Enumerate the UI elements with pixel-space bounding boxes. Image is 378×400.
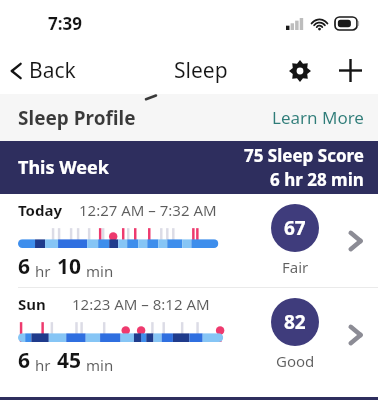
button[interactable]: Today bbox=[0, 194, 378, 287]
staticText: 10 bbox=[57, 252, 82, 281]
staticText: 6 hr 28 min bbox=[270, 168, 364, 191]
button[interactable]: Back bbox=[0, 50, 86, 91]
staticText: 6 bbox=[18, 346, 31, 375]
staticText: min bbox=[86, 355, 114, 375]
staticText: Learn More bbox=[272, 106, 364, 129]
staticText: 82 bbox=[284, 309, 306, 335]
staticText: 6 bbox=[18, 252, 31, 281]
staticText: Today bbox=[18, 200, 63, 220]
button[interactable]: Open sleep details bbox=[332, 211, 378, 271]
staticText: 67 bbox=[284, 215, 306, 241]
staticText: Good bbox=[276, 351, 315, 371]
staticText: 45 bbox=[57, 346, 82, 375]
staticText: Sleep bbox=[174, 56, 228, 85]
button[interactable]: Add bbox=[331, 51, 370, 90]
staticText: 12:23 AM – 8:12 AM bbox=[72, 294, 210, 314]
staticText: Sleep Profile bbox=[18, 105, 136, 131]
staticText: Sun bbox=[18, 294, 46, 314]
staticText: min bbox=[86, 261, 114, 281]
staticText: 7:39 bbox=[48, 12, 82, 35]
button[interactable]: Settings bbox=[281, 52, 319, 90]
button[interactable]: Open sleep details bbox=[332, 305, 378, 365]
button[interactable]: Sun bbox=[0, 288, 378, 381]
staticText: hr bbox=[35, 355, 51, 375]
staticText: hr bbox=[35, 261, 51, 281]
staticText: This Week bbox=[18, 155, 109, 180]
staticText: 12:27 AM – 7:32 AM bbox=[79, 200, 217, 220]
button[interactable]: This Week bbox=[0, 141, 378, 194]
staticText: 75 Sleep Score bbox=[244, 144, 364, 167]
button[interactable]: Sleep Profile bbox=[0, 94, 378, 141]
staticText: Fair bbox=[282, 257, 309, 277]
staticText: Back bbox=[29, 56, 76, 85]
